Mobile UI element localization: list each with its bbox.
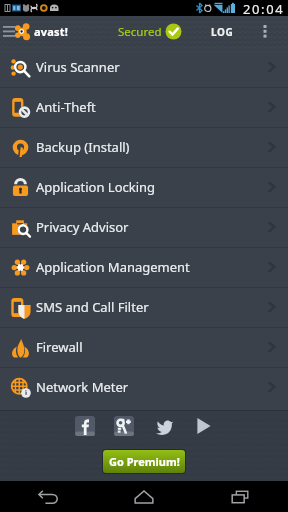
button[interactable]: Application Management xyxy=(0,247,288,287)
button[interactable]: Secured xyxy=(118,23,182,40)
staticText: 20:04 xyxy=(243,0,285,16)
button[interactable]: Go Premium! xyxy=(103,450,185,473)
staticText: Privacy Advisor xyxy=(36,218,129,236)
button[interactable]: Twitter xyxy=(155,416,175,436)
button[interactable]: Home xyxy=(96,481,192,512)
button[interactable]: Recents xyxy=(192,481,288,512)
button[interactable]: LOG xyxy=(203,16,242,47)
button[interactable]: SMS and Call Filter xyxy=(0,287,288,327)
button[interactable]: Facebook xyxy=(75,416,95,436)
staticText: Secured xyxy=(118,24,162,40)
button[interactable]: Menu xyxy=(0,16,18,47)
staticText: Application Locking xyxy=(36,178,156,196)
staticText: Network Meter xyxy=(36,378,129,396)
button[interactable]: Privacy Advisor xyxy=(0,207,288,247)
button[interactable]: Play Store xyxy=(193,416,213,436)
staticText: Application Management xyxy=(36,258,190,276)
button[interactable]: More options xyxy=(252,16,288,47)
button[interactable]: Back xyxy=(0,481,96,512)
button[interactable]: Firewall xyxy=(0,327,288,367)
staticText: Firewall xyxy=(36,338,83,356)
staticText: Go Premium! xyxy=(109,454,180,469)
button[interactable]: Virus Scanner xyxy=(0,47,288,87)
button[interactable]: Anti-Theft xyxy=(0,87,288,127)
button[interactable]: Network Meter xyxy=(0,367,288,407)
staticText: Backup (Install) xyxy=(36,138,130,156)
button[interactable]: Google Plus xyxy=(114,416,134,436)
staticText: SMS and Call Filter xyxy=(36,298,149,316)
staticText: LOG xyxy=(211,25,234,39)
button[interactable]: Application Locking xyxy=(0,167,288,207)
button[interactable]: Backup (Install) xyxy=(0,127,288,167)
staticText: Anti-Theft xyxy=(36,98,96,116)
staticText: avast! xyxy=(34,24,69,39)
staticText: Virus Scanner xyxy=(36,58,120,76)
